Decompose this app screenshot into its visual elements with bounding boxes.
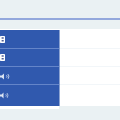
- other: Notes: [0, 36, 5, 43]
- button[interactable]: Notes: [0, 30, 59, 48]
- button[interactable]: Volume: [0, 84, 59, 106]
- button[interactable]: Volume: [0, 66, 59, 84]
- other: Volume: [0, 73, 9, 80]
- other: Notes: [0, 54, 5, 61]
- other: Volume: [0, 92, 8, 99]
- button[interactable]: Notes: [0, 48, 59, 66]
